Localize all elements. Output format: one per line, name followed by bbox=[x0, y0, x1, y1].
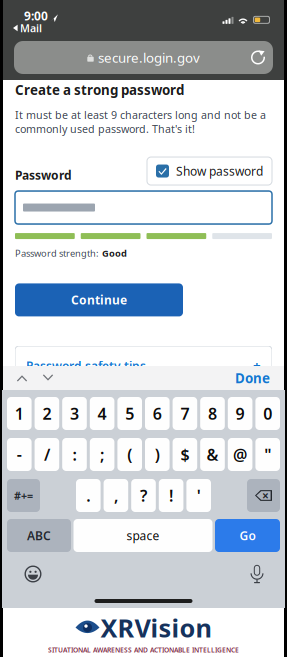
staticText: SITUATIONAL AWARENESS AND ACTIONABLE INT… bbox=[48, 645, 239, 654]
staticText: secure.login.gov bbox=[98, 49, 200, 66]
button[interactable]: 0 bbox=[255, 397, 280, 430]
staticText: 1 bbox=[15, 403, 24, 424]
staticText: : bbox=[72, 444, 76, 465]
button[interactable]: - bbox=[7, 438, 32, 471]
staticText: 8 bbox=[208, 403, 217, 424]
staticText: + bbox=[253, 357, 261, 375]
staticText: It must be at least 9 characters long an… bbox=[15, 108, 266, 136]
button[interactable]: Delete bbox=[247, 479, 280, 512]
button[interactable]: ; bbox=[90, 438, 114, 471]
staticText: , bbox=[114, 485, 118, 506]
button[interactable]: @ bbox=[228, 438, 252, 471]
button[interactable]: #+= bbox=[7, 479, 40, 512]
button[interactable]: Reload bbox=[243, 41, 273, 74]
staticText: #+= bbox=[14, 488, 33, 503]
button[interactable]: : bbox=[62, 438, 87, 471]
staticText: 0 bbox=[263, 403, 272, 424]
staticText: space bbox=[126, 527, 159, 543]
staticText: @ bbox=[233, 444, 247, 465]
staticText: 5 bbox=[125, 403, 134, 424]
staticText: Done bbox=[235, 369, 270, 387]
staticText: 4 bbox=[98, 403, 107, 424]
button[interactable]: " bbox=[255, 438, 280, 471]
button[interactable]: / bbox=[35, 438, 59, 471]
staticText: 2 bbox=[42, 403, 51, 424]
button[interactable]: 4 bbox=[90, 397, 114, 430]
button[interactable]: Done bbox=[225, 366, 280, 390]
staticText: XRVision bbox=[100, 611, 211, 644]
button[interactable]: space bbox=[73, 519, 212, 552]
button[interactable]: Go bbox=[215, 519, 280, 552]
button[interactable]: 6 bbox=[145, 397, 170, 430]
staticText: . bbox=[86, 485, 90, 506]
staticText: ; bbox=[100, 444, 104, 465]
staticText: Go bbox=[239, 527, 255, 543]
staticText: Show password bbox=[176, 163, 263, 179]
staticText: ( bbox=[127, 444, 132, 465]
button[interactable]: ' bbox=[186, 479, 211, 512]
staticText: 9 bbox=[236, 403, 245, 424]
staticText: & bbox=[206, 444, 218, 465]
button[interactable]: Previous field bbox=[9, 366, 35, 390]
button[interactable]: $ bbox=[173, 438, 197, 471]
button[interactable]: Back to Mail bbox=[11, 20, 44, 36]
button[interactable]: 1 bbox=[7, 397, 32, 430]
button[interactable]: ) bbox=[145, 438, 170, 471]
button[interactable]: & bbox=[200, 438, 225, 471]
button[interactable]: ( bbox=[117, 438, 142, 471]
button[interactable]: Show password bbox=[147, 157, 272, 185]
staticText: 6 bbox=[153, 403, 162, 424]
staticText: 3 bbox=[70, 403, 79, 424]
button[interactable]: ABC bbox=[7, 519, 71, 552]
staticText: ? bbox=[140, 485, 147, 506]
staticText: $ bbox=[180, 444, 189, 465]
button[interactable]: ! bbox=[159, 479, 183, 512]
staticText: Password bbox=[15, 167, 72, 183]
button[interactable]: 5 bbox=[117, 397, 142, 430]
button[interactable]: 7 bbox=[173, 397, 197, 430]
button[interactable]: 8 bbox=[200, 397, 225, 430]
staticText: Good bbox=[102, 247, 127, 259]
button[interactable]: . bbox=[76, 479, 101, 512]
staticText: Password safety tips bbox=[26, 358, 146, 374]
staticText: 9:00 bbox=[24, 8, 48, 24]
staticText: ABC bbox=[27, 527, 51, 543]
button[interactable]: ? bbox=[131, 479, 156, 512]
button[interactable]: Emoji keyboard bbox=[20, 562, 46, 586]
button[interactable]: 2 bbox=[35, 397, 59, 430]
button[interactable]: secure.login.gov bbox=[14, 41, 273, 74]
button[interactable]: 9 bbox=[228, 397, 252, 430]
staticText: Mail bbox=[20, 21, 42, 35]
button[interactable]: Password safety tips bbox=[15, 346, 272, 366]
staticText: " bbox=[264, 444, 271, 465]
button[interactable]: Next field bbox=[35, 366, 61, 390]
button[interactable]: 3 bbox=[62, 397, 87, 430]
staticText: - bbox=[17, 444, 22, 465]
staticText: Create a strong password bbox=[15, 81, 184, 99]
button[interactable]: , bbox=[104, 479, 128, 512]
staticText: ' bbox=[197, 485, 201, 506]
staticText: / bbox=[44, 444, 50, 465]
staticText: Password strength: bbox=[15, 247, 99, 259]
button[interactable]: Dictation bbox=[244, 562, 270, 586]
button[interactable]: Continue bbox=[15, 283, 183, 316]
staticText: Continue bbox=[71, 292, 127, 308]
staticText: ! bbox=[169, 485, 173, 506]
staticText: ) bbox=[155, 444, 160, 465]
staticText: × bbox=[262, 487, 269, 503]
staticText: 7 bbox=[180, 403, 189, 424]
